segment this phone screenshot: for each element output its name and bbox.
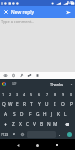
staticText: K [57,111,60,118]
button[interactable]: Shift [0,119,10,129]
staticText: I [54,101,56,108]
button[interactable]: 6 [35,89,43,99]
staticText: G [36,111,40,118]
button[interactable]: R [21,99,28,109]
staticText: Y [38,101,41,108]
button[interactable]: Recents [51,140,63,150]
button[interactable]: Thanks [48,82,66,87]
staticText: H [43,111,47,118]
button[interactable]: 5 [28,89,35,99]
button[interactable]: C [24,119,31,129]
button[interactable]: 0 [67,89,75,99]
button[interactable]: Google [1,81,7,87]
button[interactable]: GIF [10,81,18,87]
button[interactable]: K [55,109,62,119]
staticText: O [61,101,65,108]
button[interactable]: Home [31,140,43,150]
button[interactable]: Backspace [59,119,75,129]
staticText: . [59,131,61,138]
button[interactable]: I [51,99,59,109]
staticText: M [53,121,58,128]
staticText: U [45,101,49,108]
staticText: S [13,111,16,118]
staticText: Z [12,121,15,128]
button[interactable]: A [2,109,10,119]
button[interactable]: ?123 [0,129,9,139]
button[interactable]: Send [63,6,74,18]
staticText: New reply [11,9,34,16]
staticText: T [30,101,33,108]
staticText: Q [2,101,6,108]
button[interactable]: Z [10,119,17,129]
staticText: J [51,111,53,118]
button[interactable]: Close [0,6,11,18]
button[interactable]: . [56,129,64,139]
staticText: Thanks [50,82,64,87]
staticText: L [64,111,67,118]
button[interactable]: Camera [1,72,9,79]
button[interactable]: H [41,109,48,119]
button[interactable]: 3 [14,89,21,99]
button[interactable]: 2 [7,89,14,99]
staticText: F [29,111,32,118]
staticText: R [23,101,26,108]
staticText: ?123 [1,132,9,137]
button[interactable]: L [62,109,69,119]
button[interactable]: G [34,109,41,119]
button[interactable]: Link [25,72,33,79]
staticText: D [20,111,24,118]
button[interactable]: W [7,99,14,109]
button[interactable]: X [17,119,24,129]
button[interactable]: 8 [51,89,59,99]
staticText: 9:30 [67,1,74,5]
button[interactable]: Emoji [18,129,27,139]
staticText: 8 [54,92,57,97]
staticText: 5 [30,92,33,97]
button[interactable]: N [45,119,52,129]
staticText: W [8,101,13,108]
button[interactable]: E [14,99,21,109]
button[interactable]: Format [33,72,41,79]
staticText: A [4,111,8,118]
button[interactable]: F [26,109,34,119]
staticText: C [26,121,30,128]
button[interactable]: O [59,99,67,109]
staticText: 1 [2,92,5,97]
staticText: 2 [9,92,12,97]
button[interactable]: 9 [59,89,67,99]
button[interactable]: T [28,99,35,109]
staticText: 6 [38,92,41,97]
staticText: 4 [23,92,26,97]
button[interactable]: M [52,119,59,129]
button[interactable]: Enter [64,129,75,139]
staticText: V [33,121,36,128]
staticText: Type a comment… [1,19,35,24]
button[interactable]: 7 [43,89,51,99]
button[interactable]: U [43,99,51,109]
button[interactable]: Gallery [9,72,17,79]
staticText: GIF [12,82,17,86]
button[interactable]: More [69,82,74,87]
staticText: 3 [16,92,19,97]
button[interactable]: P [67,99,75,109]
staticText: B [40,121,44,128]
button[interactable]: Comma [9,129,18,139]
button[interactable]: V [31,119,38,129]
button[interactable]: 4 [21,89,28,99]
button[interactable]: Back [12,140,24,150]
button[interactable]: Attach [17,72,25,79]
button[interactable]: S [10,109,18,119]
button[interactable]: B [38,119,45,129]
staticText: 9 [62,92,65,97]
staticText: N [47,121,51,128]
staticText: X [19,121,22,128]
button[interactable]: Y [35,99,43,109]
staticText: P [70,101,73,108]
button[interactable]: Q [0,99,7,109]
button[interactable]: D [18,109,26,119]
staticText: E [16,101,19,108]
button[interactable]: 1 [0,89,7,99]
button[interactable]: J [48,109,55,119]
staticText: 7 [46,92,49,97]
